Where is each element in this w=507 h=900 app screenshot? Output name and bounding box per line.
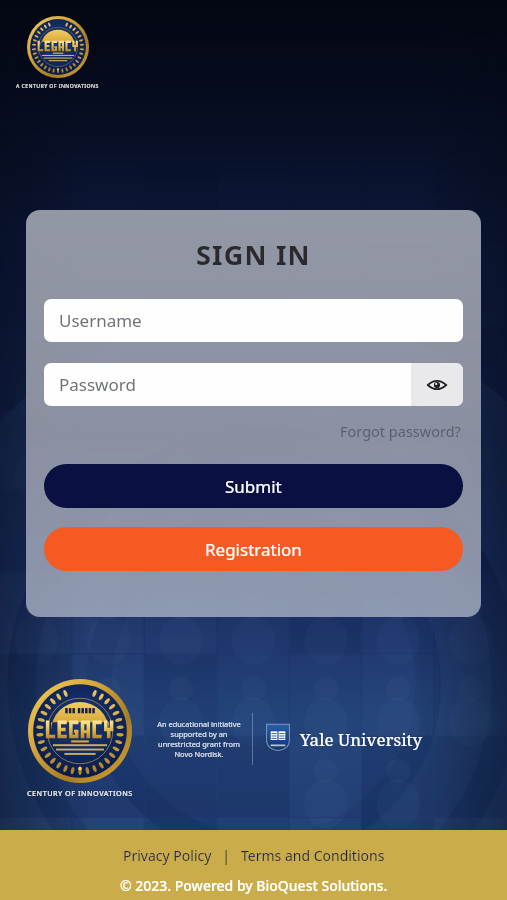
staticText: Username <box>59 309 142 332</box>
staticText: Submit <box>225 475 282 498</box>
staticText: | <box>215 846 238 865</box>
staticText: Password <box>59 373 136 396</box>
button[interactable]: Forgot password? <box>338 418 463 444</box>
button[interactable]: Show password <box>411 363 463 406</box>
staticText: CENTURY OF INNOVATIONS <box>27 788 133 798</box>
staticText: Registration <box>205 538 302 561</box>
button[interactable]: Submit <box>44 464 463 508</box>
staticText: A CENTURY OF INNOVATIONS <box>16 82 99 89</box>
button[interactable]: Terms and Conditions <box>238 844 388 867</box>
staticText: Terms and Conditions <box>241 846 385 865</box>
staticText: SIGN IN <box>196 236 311 273</box>
button[interactable]: Username <box>44 299 463 342</box>
button[interactable]: Registration <box>44 527 463 571</box>
button[interactable]: Privacy Policy <box>120 844 215 867</box>
staticText: Privacy Policy <box>123 846 212 865</box>
staticText: Yale University <box>300 728 423 751</box>
button[interactable]: Password <box>44 363 411 406</box>
staticText: Forgot password? <box>340 421 461 441</box>
staticText: © 2023. Powered by BioQuest Solutions. <box>120 876 388 895</box>
staticText: An educational initiative supported by a… <box>156 719 242 759</box>
